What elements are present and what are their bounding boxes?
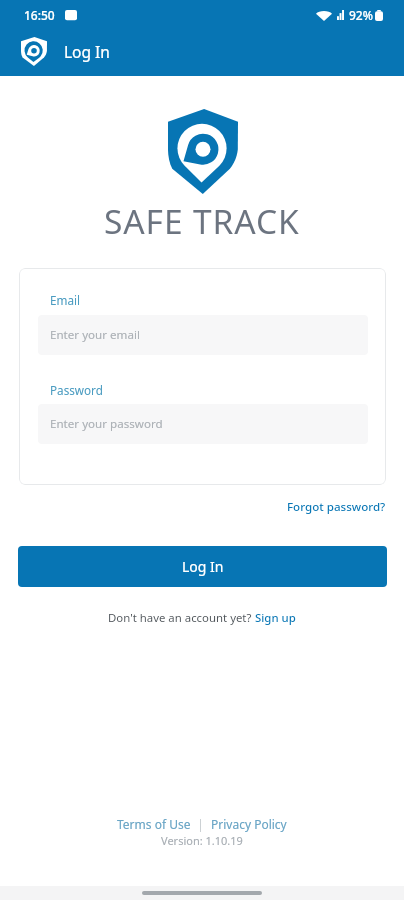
staticText: 16:50 — [24, 7, 55, 23]
staticText: SAFE TRACK — [104, 198, 300, 244]
button[interactable]: Terms of Use — [117, 816, 191, 832]
staticText: Enter your email — [50, 327, 140, 343]
button[interactable]: Privacy Policy — [211, 816, 287, 832]
staticText: Password — [50, 382, 103, 398]
staticText: Log In — [182, 557, 224, 576]
staticText: Terms of Use — [117, 816, 191, 832]
staticText: Version: 1.10.19 — [161, 833, 243, 848]
staticText: Sign up — [255, 610, 296, 626]
staticText: Don't have an account yet? — [108, 610, 255, 626]
staticText: Email — [50, 292, 81, 308]
button[interactable]: Log In — [18, 546, 387, 587]
button[interactable]: Safe Track logo — [21, 37, 47, 66]
button[interactable]: Enter your password — [38, 404, 368, 444]
staticText: Enter your password — [50, 416, 163, 432]
button[interactable]: Enter your email — [38, 315, 368, 355]
staticText: Privacy Policy — [211, 816, 287, 832]
button[interactable]: Sign up — [255, 610, 296, 626]
staticText: Forgot password? — [287, 499, 386, 515]
staticText: | — [191, 816, 211, 832]
button[interactable]: Forgot password? — [279, 495, 404, 519]
staticText: 92% — [349, 7, 373, 23]
staticText: Log In — [64, 41, 110, 62]
